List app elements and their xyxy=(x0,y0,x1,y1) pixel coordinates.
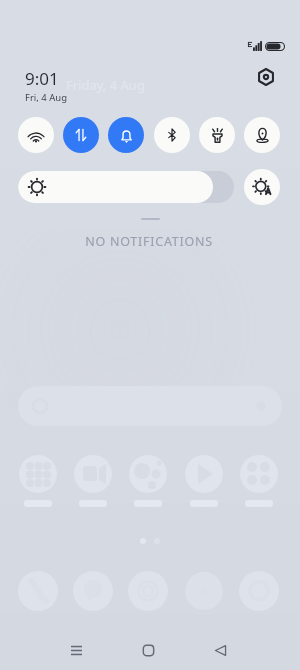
button[interactable]: Recents xyxy=(41,633,112,667)
button[interactable]: Settings xyxy=(251,62,281,92)
button[interactable]: Mobile data xyxy=(63,117,99,153)
button[interactable]: Home xyxy=(112,633,184,667)
button[interactable]: Notifications xyxy=(108,117,144,153)
staticText: 9:01 xyxy=(25,67,59,90)
button[interactable]: Brightness xyxy=(18,171,234,203)
button[interactable]: Back xyxy=(184,633,256,667)
button[interactable]: Flashlight xyxy=(199,117,235,153)
staticText: NO NOTIFICATIONS xyxy=(85,233,213,250)
button[interactable]: Bluetooth xyxy=(154,117,190,153)
staticText: Fri, 4 Aug xyxy=(25,91,68,104)
button[interactable]: Location xyxy=(244,117,280,153)
button[interactable]: Auto brightness xyxy=(244,169,280,205)
staticText: Friday, 4 Aug xyxy=(66,76,145,94)
button[interactable]: Wi-Fi xyxy=(18,117,54,153)
